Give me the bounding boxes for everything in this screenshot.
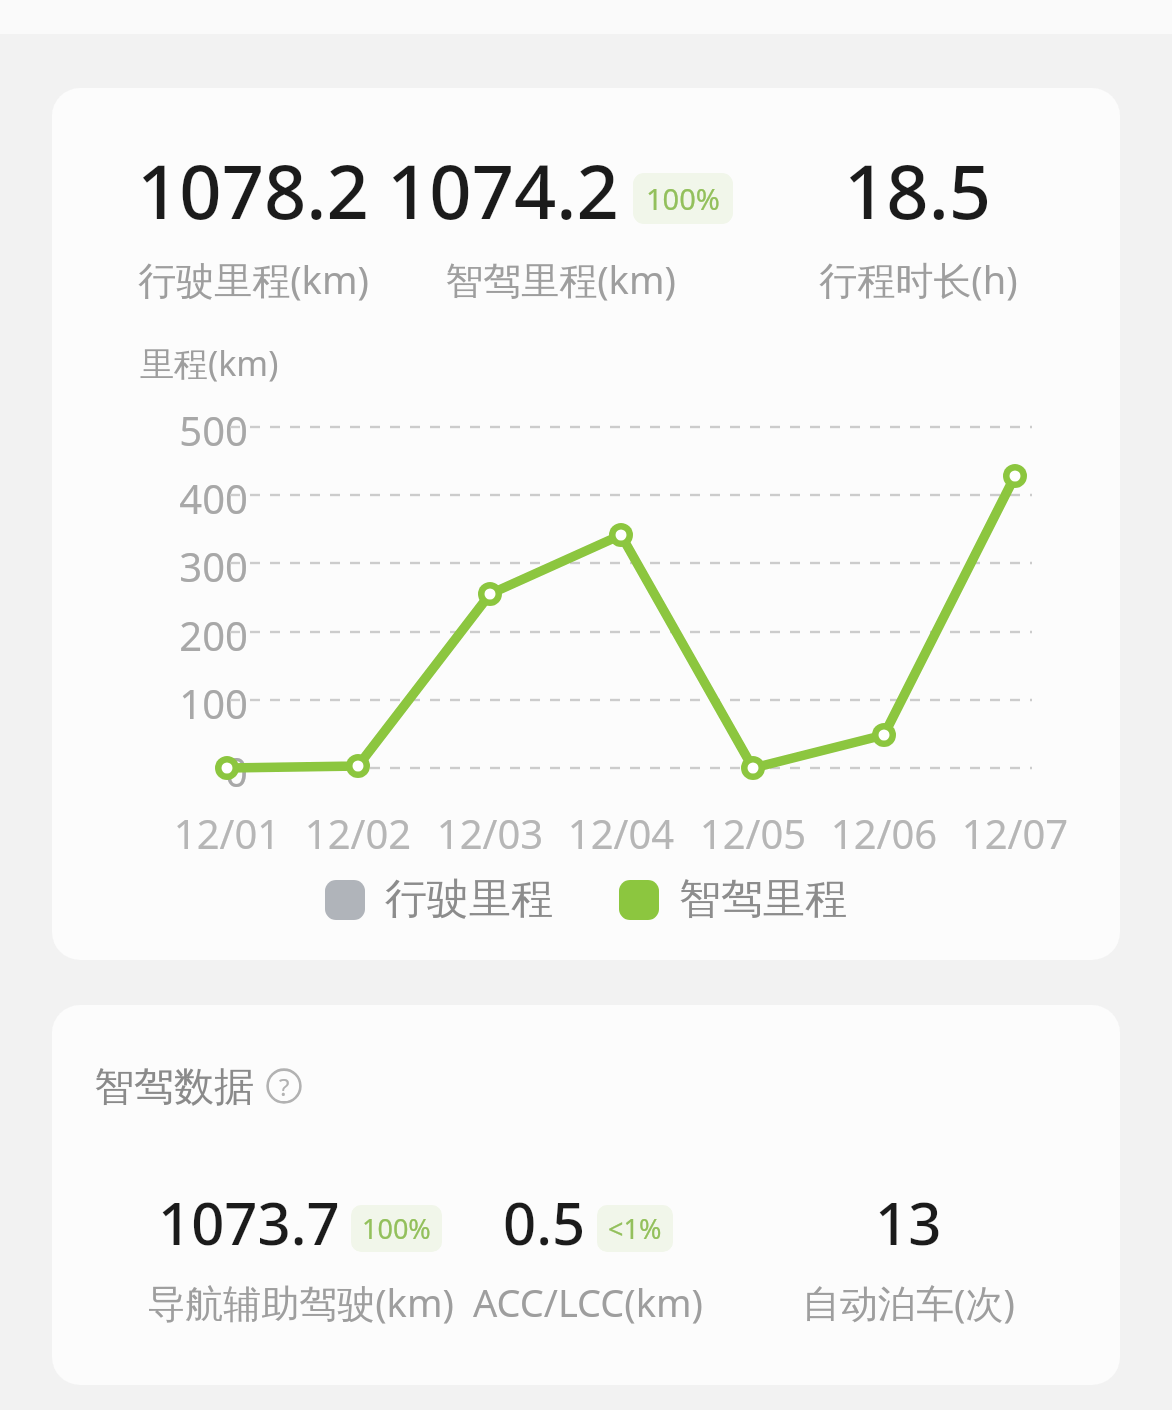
staticText: 自动泊车(次) <box>802 1276 1015 1328</box>
staticText: ? <box>279 1070 290 1103</box>
staticText: 12/04 <box>546 806 696 860</box>
staticText: 0.5 <box>503 1183 586 1262</box>
button[interactable]: 1078.2 <box>52 140 483 305</box>
button[interactable]: 0.5 <box>368 1183 808 1328</box>
staticText: 行程时长(h) <box>819 253 1018 305</box>
button[interactable]: 智驾数据 <box>94 1061 302 1111</box>
staticText: 12/03 <box>415 806 565 860</box>
staticText: 1073.7 <box>158 1183 340 1262</box>
staticText: 500 <box>132 403 248 457</box>
staticText: 智驾数据 <box>94 1061 254 1111</box>
button[interactable]: 18.5 <box>688 140 1120 305</box>
button[interactable]: Help <box>266 1068 302 1104</box>
staticText: 12/05 <box>678 806 828 860</box>
button[interactable]: 1073.7 <box>80 1183 520 1328</box>
staticText: 导航辅助驾驶(km) <box>147 1276 454 1328</box>
button[interactable]: 13 <box>688 1183 1120 1328</box>
staticText: 12/07 <box>940 806 1090 860</box>
staticText: 12/06 <box>809 806 959 860</box>
staticText: <1% <box>608 1210 662 1247</box>
staticText: 1078.2 <box>137 140 369 241</box>
button[interactable]: 行驶里程 <box>325 873 553 926</box>
staticText: 100% <box>646 179 720 218</box>
staticText: 13 <box>875 1183 942 1262</box>
staticText: 12/01 <box>152 806 302 860</box>
staticText: 12/02 <box>283 806 433 860</box>
staticText: ACC/LCC(km) <box>473 1276 703 1328</box>
staticText: 300 <box>132 539 248 593</box>
staticText: 18.5 <box>844 140 992 241</box>
staticText: 智驾里程 <box>679 873 847 926</box>
staticText: 0 <box>132 744 248 798</box>
staticText: 里程(km) <box>140 340 279 386</box>
staticText: 智驾里程(km) <box>445 253 676 305</box>
staticText: 100 <box>132 676 248 730</box>
staticText: 400 <box>132 471 248 525</box>
staticText: 1074.2 <box>387 140 619 241</box>
staticText: 行驶里程 <box>385 873 553 926</box>
button[interactable]: 智驾里程 <box>619 873 847 926</box>
button[interactable]: 1074.2 <box>330 140 790 305</box>
staticText: 行驶里程(km) <box>138 253 369 305</box>
staticText: 200 <box>132 608 248 662</box>
staticText: 100% <box>362 1210 431 1247</box>
